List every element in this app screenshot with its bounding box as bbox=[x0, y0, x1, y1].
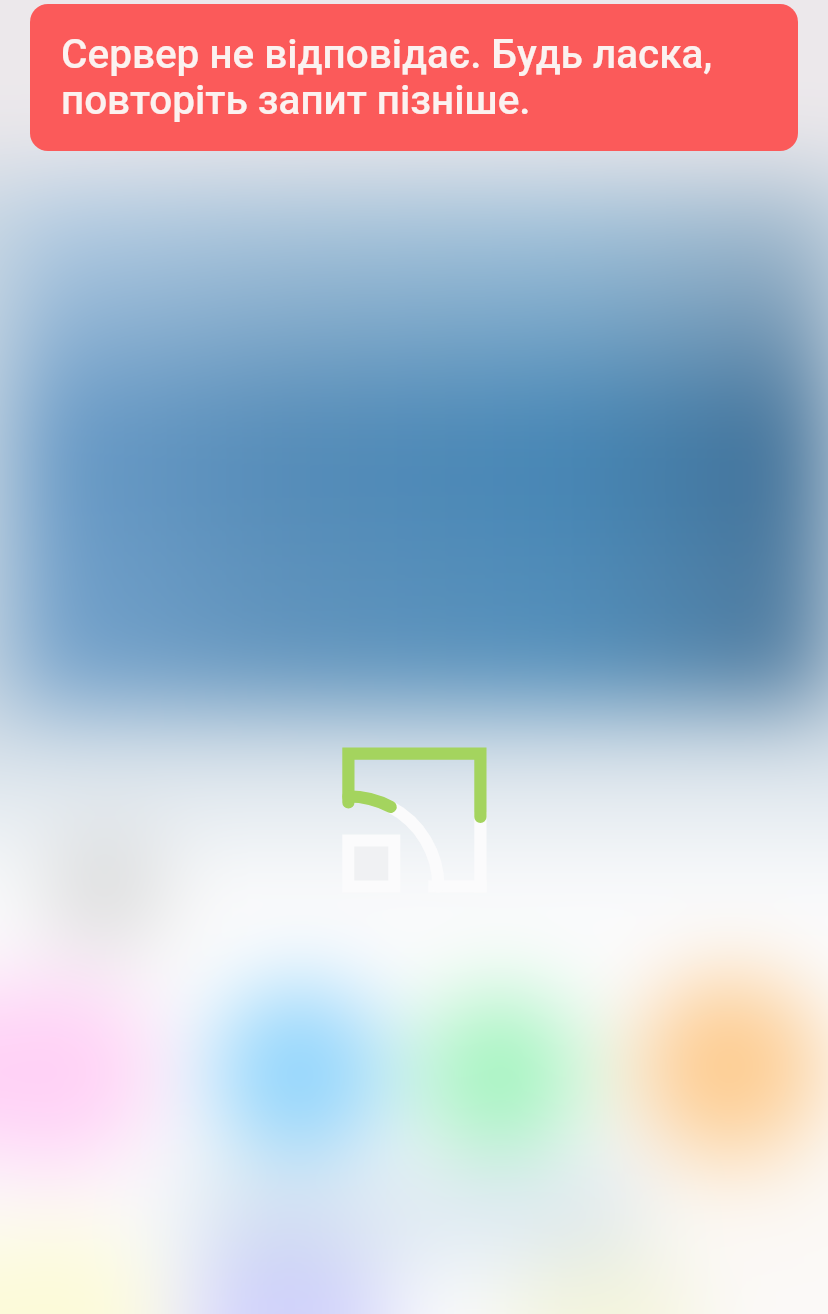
staticText: Сервер не відповідає. Будь ласка, повтор… bbox=[61, 30, 772, 124]
button[interactable]: Сервер не відповідає. Будь ласка, повтор… bbox=[30, 4, 798, 151]
